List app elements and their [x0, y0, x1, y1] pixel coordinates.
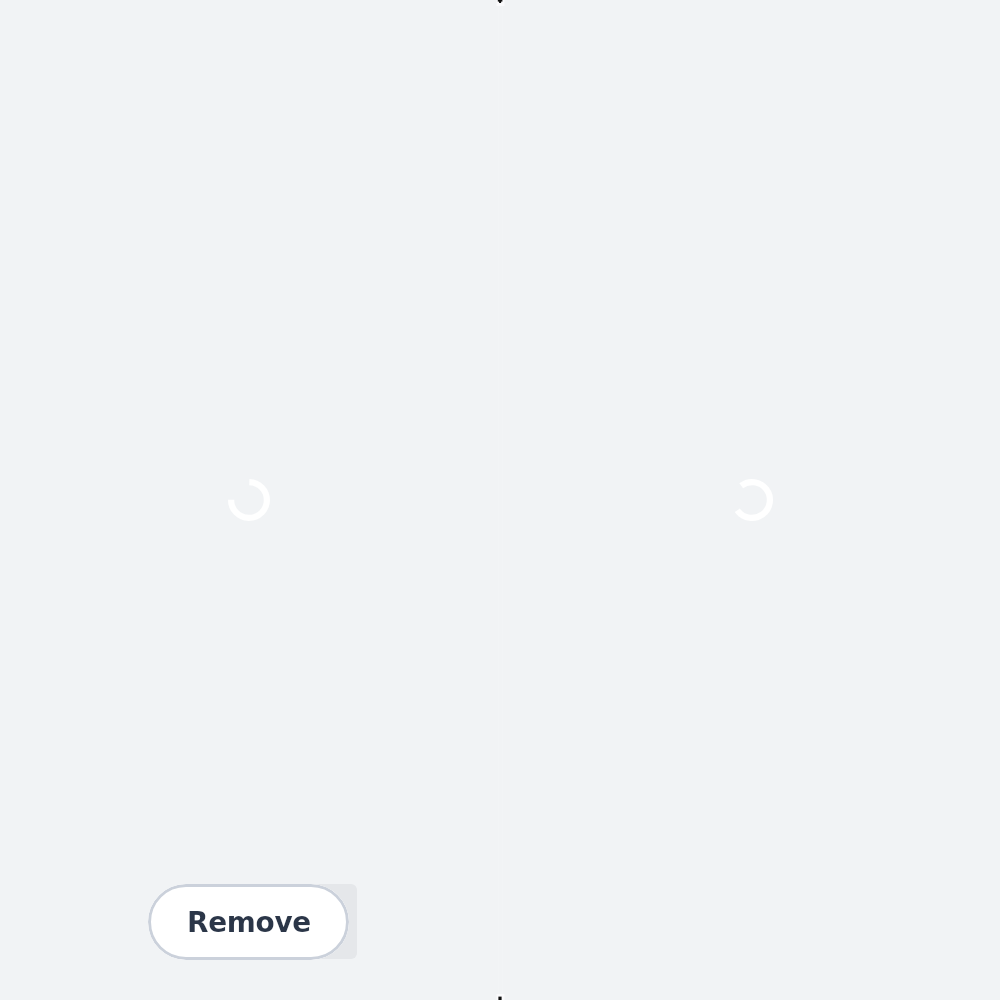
button[interactable]: Remove — [148, 884, 349, 960]
other: Loading — [228, 479, 270, 521]
staticText: Remove — [187, 906, 311, 938]
other: Loading — [731, 479, 773, 521]
